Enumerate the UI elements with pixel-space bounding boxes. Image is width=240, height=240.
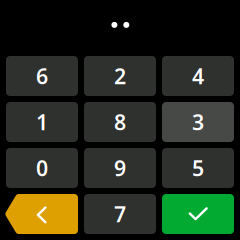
button[interactable]: 2: [84, 56, 156, 96]
staticText: 4: [192, 62, 204, 90]
button[interactable]: 8: [84, 102, 156, 142]
button[interactable]: Delete: [6, 194, 78, 234]
staticText: 0: [36, 154, 48, 182]
button[interactable]: 9: [84, 148, 156, 188]
staticText: 2: [114, 62, 126, 90]
button[interactable]: 3: [162, 102, 234, 142]
staticText: 3: [192, 108, 204, 136]
staticText: 7: [114, 200, 126, 228]
button[interactable]: Confirm: [162, 194, 234, 234]
button[interactable]: 4: [162, 56, 234, 96]
button[interactable]: 7: [84, 194, 156, 234]
staticText: 1: [36, 108, 48, 136]
button[interactable]: 0: [6, 148, 78, 188]
staticText: 6: [36, 62, 48, 90]
button[interactable]: 1: [6, 102, 78, 142]
button[interactable]: 5: [162, 148, 234, 188]
staticText: 8: [114, 108, 126, 136]
button[interactable]: 6: [6, 56, 78, 96]
staticText: 9: [114, 154, 126, 182]
staticText: 5: [192, 154, 204, 182]
